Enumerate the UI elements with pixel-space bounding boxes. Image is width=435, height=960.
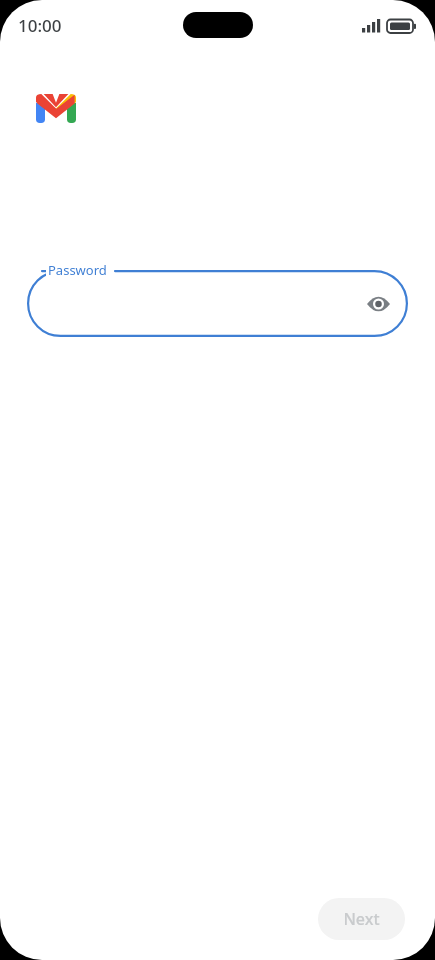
staticText: 10:00	[18, 14, 62, 37]
button[interactable]: Show password	[360, 286, 396, 322]
staticText: Password	[48, 261, 107, 279]
button[interactable]: Password	[27, 270, 408, 337]
button[interactable]: Next	[318, 898, 405, 940]
staticText: Next	[343, 908, 380, 930]
